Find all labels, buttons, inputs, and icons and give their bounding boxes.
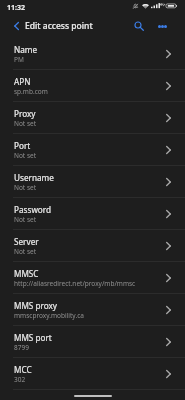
button[interactable]: Search [129, 16, 149, 36]
staticText: MMS proxy [14, 300, 58, 311]
button[interactable]: More options [152, 16, 172, 36]
staticText: Server [14, 236, 39, 247]
button[interactable]: MCC [0, 358, 185, 389]
staticText: 302 [14, 375, 26, 384]
staticText: Not set [14, 215, 37, 224]
staticText: Not set [14, 183, 37, 192]
staticText: MMSC [14, 268, 39, 279]
staticText: Password [14, 204, 52, 215]
button[interactable]: Back [8, 17, 25, 34]
staticText: MMS port [14, 332, 52, 343]
staticText: mmscproxy.mobility.ca [14, 311, 84, 320]
button[interactable]: APN [0, 70, 185, 101]
staticText: PM [14, 55, 24, 64]
staticText: sp.mb.com [14, 87, 48, 96]
button[interactable]: Proxy [0, 102, 185, 133]
staticText: Not set [14, 151, 37, 160]
staticText: Not set [14, 119, 37, 128]
staticText: Edit access point [25, 20, 93, 32]
button[interactable]: Port [0, 134, 185, 165]
button[interactable]: Server [0, 230, 185, 261]
button[interactable]: MMS port [0, 326, 185, 357]
staticText: 8799 [14, 343, 29, 352]
staticText: Name [14, 44, 38, 55]
staticText: MCC [14, 364, 32, 375]
staticText: APN [14, 76, 31, 87]
button[interactable]: Password [0, 198, 185, 229]
button[interactable]: Name [0, 38, 185, 69]
staticText: http://aliasredirect.net/proxy/mb/mmsc [14, 279, 136, 288]
staticText: Not set [14, 247, 37, 256]
staticText: Username [14, 172, 54, 183]
staticText: 11:32 [7, 3, 25, 13]
button[interactable]: MMS proxy [0, 294, 185, 325]
button[interactable]: MMSC [0, 262, 185, 293]
staticText: Port [14, 140, 31, 151]
button[interactable]: Username [0, 166, 185, 197]
staticText: Proxy [14, 108, 36, 119]
